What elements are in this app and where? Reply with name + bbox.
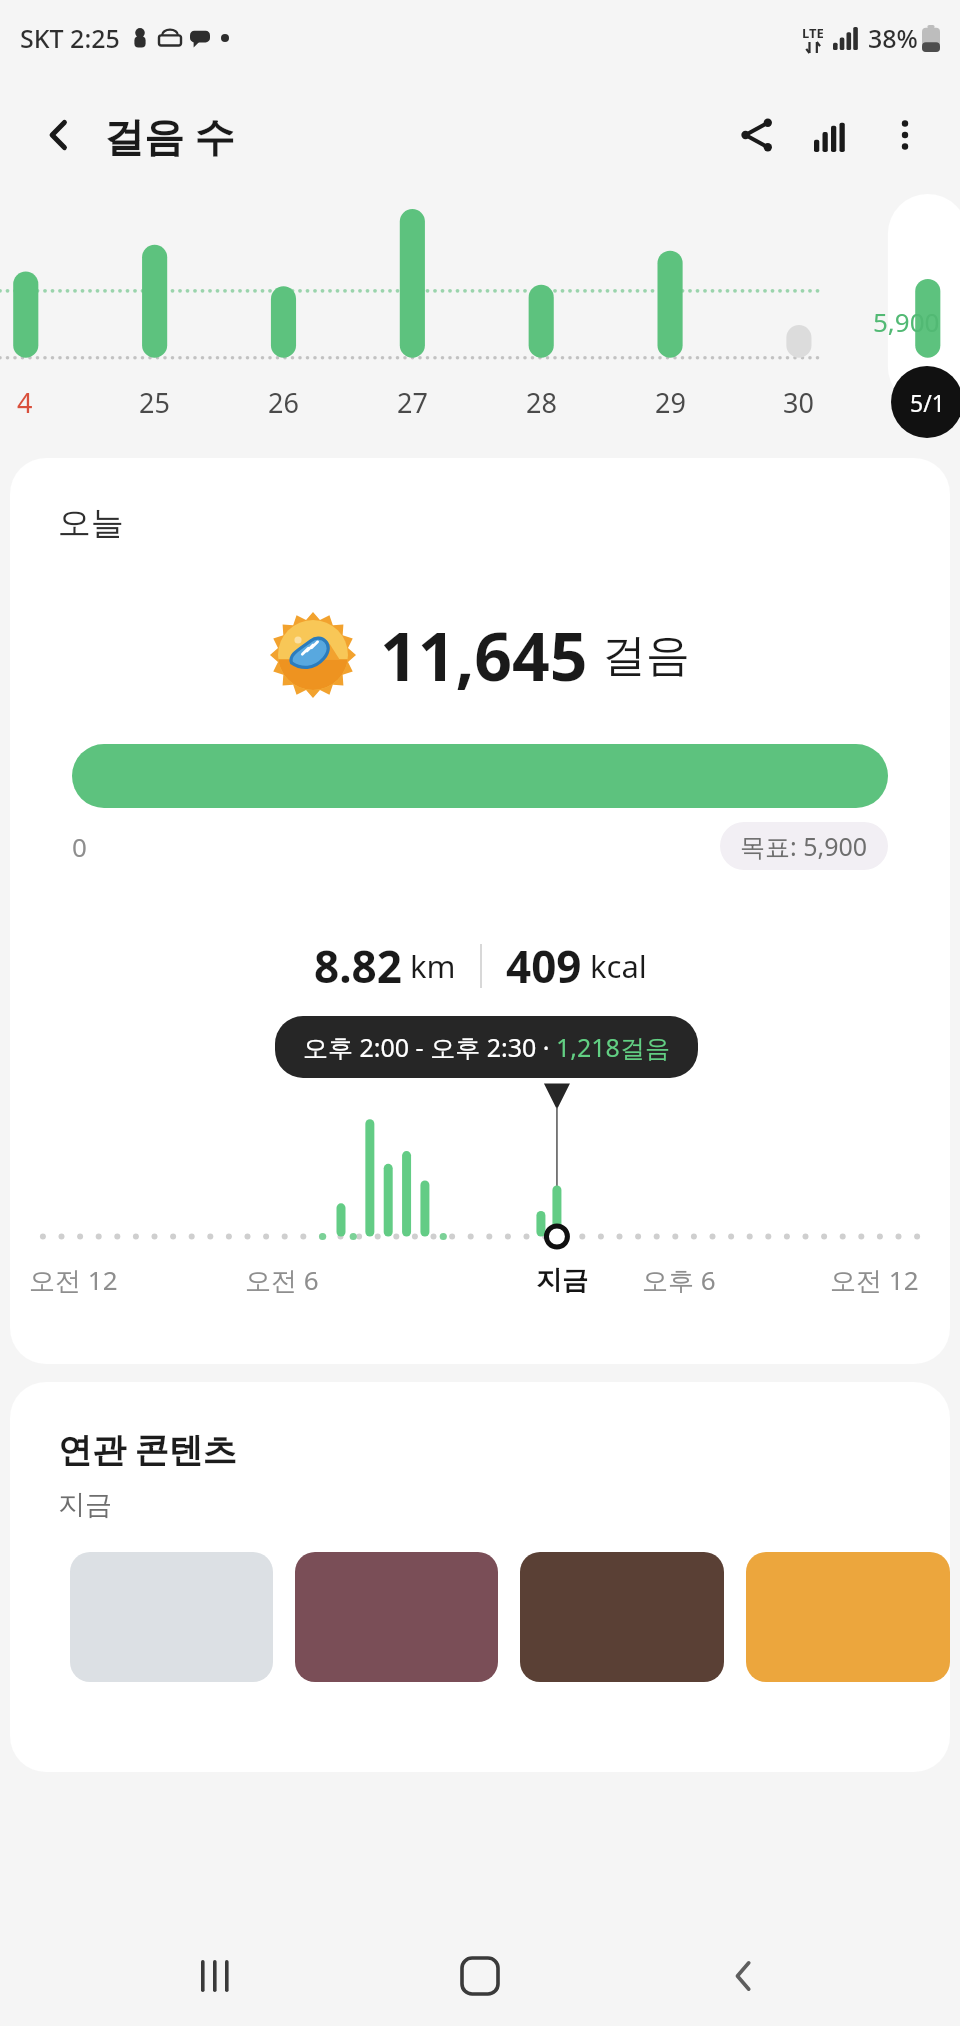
- staticText: 5/1: [910, 387, 945, 418]
- button[interactable]: 26: [268, 384, 299, 421]
- staticText: 11,645: [380, 610, 588, 700]
- button[interactable]: Back: [28, 104, 90, 166]
- button[interactable]: Home: [432, 1928, 528, 2024]
- staticText: 5,900: [873, 304, 940, 339]
- button[interactable]: 29: [655, 384, 686, 421]
- staticText: 오전 12: [29, 1262, 118, 1298]
- staticText: 오후 2:00 - 오후 2:30 ·: [303, 1030, 556, 1064]
- staticText: 오후 6: [642, 1262, 716, 1298]
- button[interactable]: Back: [696, 1928, 792, 2024]
- button[interactable]: [70, 1552, 273, 1682]
- button[interactable]: 28: [526, 384, 557, 421]
- button[interactable]: [520, 1552, 724, 1682]
- staticText: 목표: 5,900: [740, 829, 868, 863]
- staticText: kcal: [590, 945, 647, 987]
- staticText: 30: [783, 384, 814, 421]
- staticText: 0: [72, 829, 87, 864]
- button[interactable]: [295, 1552, 498, 1682]
- staticText: 1,218걸음: [556, 1030, 670, 1064]
- button[interactable]: 5/1: [891, 366, 960, 438]
- button[interactable]: 27: [397, 384, 428, 421]
- button[interactable]: 오후 2:00 - 오후 2:30 ·: [275, 1016, 698, 1078]
- button[interactable]: 4: [17, 384, 33, 421]
- staticText: 28: [526, 384, 557, 421]
- staticText: 지금: [536, 1264, 588, 1297]
- button[interactable]: 25: [139, 384, 170, 421]
- staticText: km: [410, 945, 456, 987]
- staticText: 오전 6: [245, 1262, 319, 1298]
- button[interactable]: More options: [868, 98, 942, 172]
- button[interactable]: Share: [720, 98, 794, 172]
- button[interactable]: 연관 콘텐츠: [10, 1382, 950, 1772]
- staticText: 4: [17, 384, 33, 421]
- staticText: 26: [268, 384, 299, 421]
- button[interactable]: 오늘: [10, 458, 950, 1364]
- button[interactable]: 30: [783, 384, 814, 421]
- staticText: 27: [397, 384, 428, 421]
- staticText: 29: [655, 384, 686, 421]
- button[interactable]: Recents: [168, 1928, 264, 2024]
- staticText: 오늘: [58, 502, 124, 544]
- staticText: SKT 2:25: [20, 21, 120, 55]
- staticText: 오전 12: [830, 1262, 919, 1298]
- staticText: 25: [139, 384, 170, 421]
- staticText: 걸음: [602, 628, 690, 683]
- staticText: 연관 콘텐츠: [58, 1426, 237, 1472]
- staticText: LTE: [802, 24, 824, 42]
- staticText: 걸음 수: [104, 108, 235, 163]
- button[interactable]: Statistics: [794, 98, 868, 172]
- staticText: 지금: [58, 1488, 112, 1522]
- button[interactable]: [746, 1552, 950, 1682]
- staticText: 38%: [868, 21, 918, 55]
- staticText: 8.82: [314, 936, 402, 996]
- staticText: 409: [506, 936, 582, 996]
